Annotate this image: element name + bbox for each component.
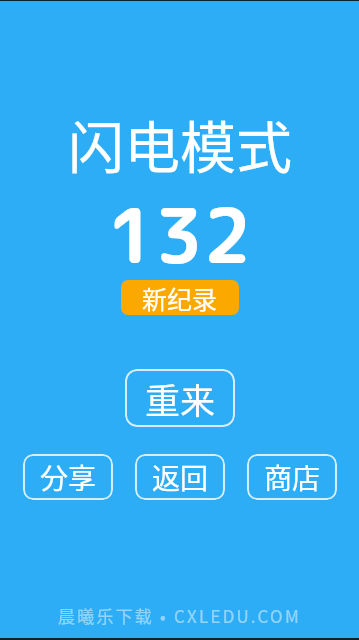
- staticText: 晨曦乐下载 • CXLEDU.COM: [58, 603, 301, 628]
- button[interactable]: 重来: [125, 369, 235, 427]
- button[interactable]: 分享: [23, 454, 113, 500]
- button[interactable]: 商店: [247, 454, 337, 500]
- staticText: 新纪录: [142, 280, 218, 315]
- staticText: 闪电模式: [68, 103, 292, 184]
- button[interactable]: 返回: [135, 454, 225, 500]
- staticText: 分享: [40, 457, 97, 498]
- staticText: 重来: [145, 373, 216, 424]
- staticText: 商店: [264, 457, 321, 498]
- staticText: 132: [107, 182, 252, 287]
- staticText: 返回: [152, 457, 209, 498]
